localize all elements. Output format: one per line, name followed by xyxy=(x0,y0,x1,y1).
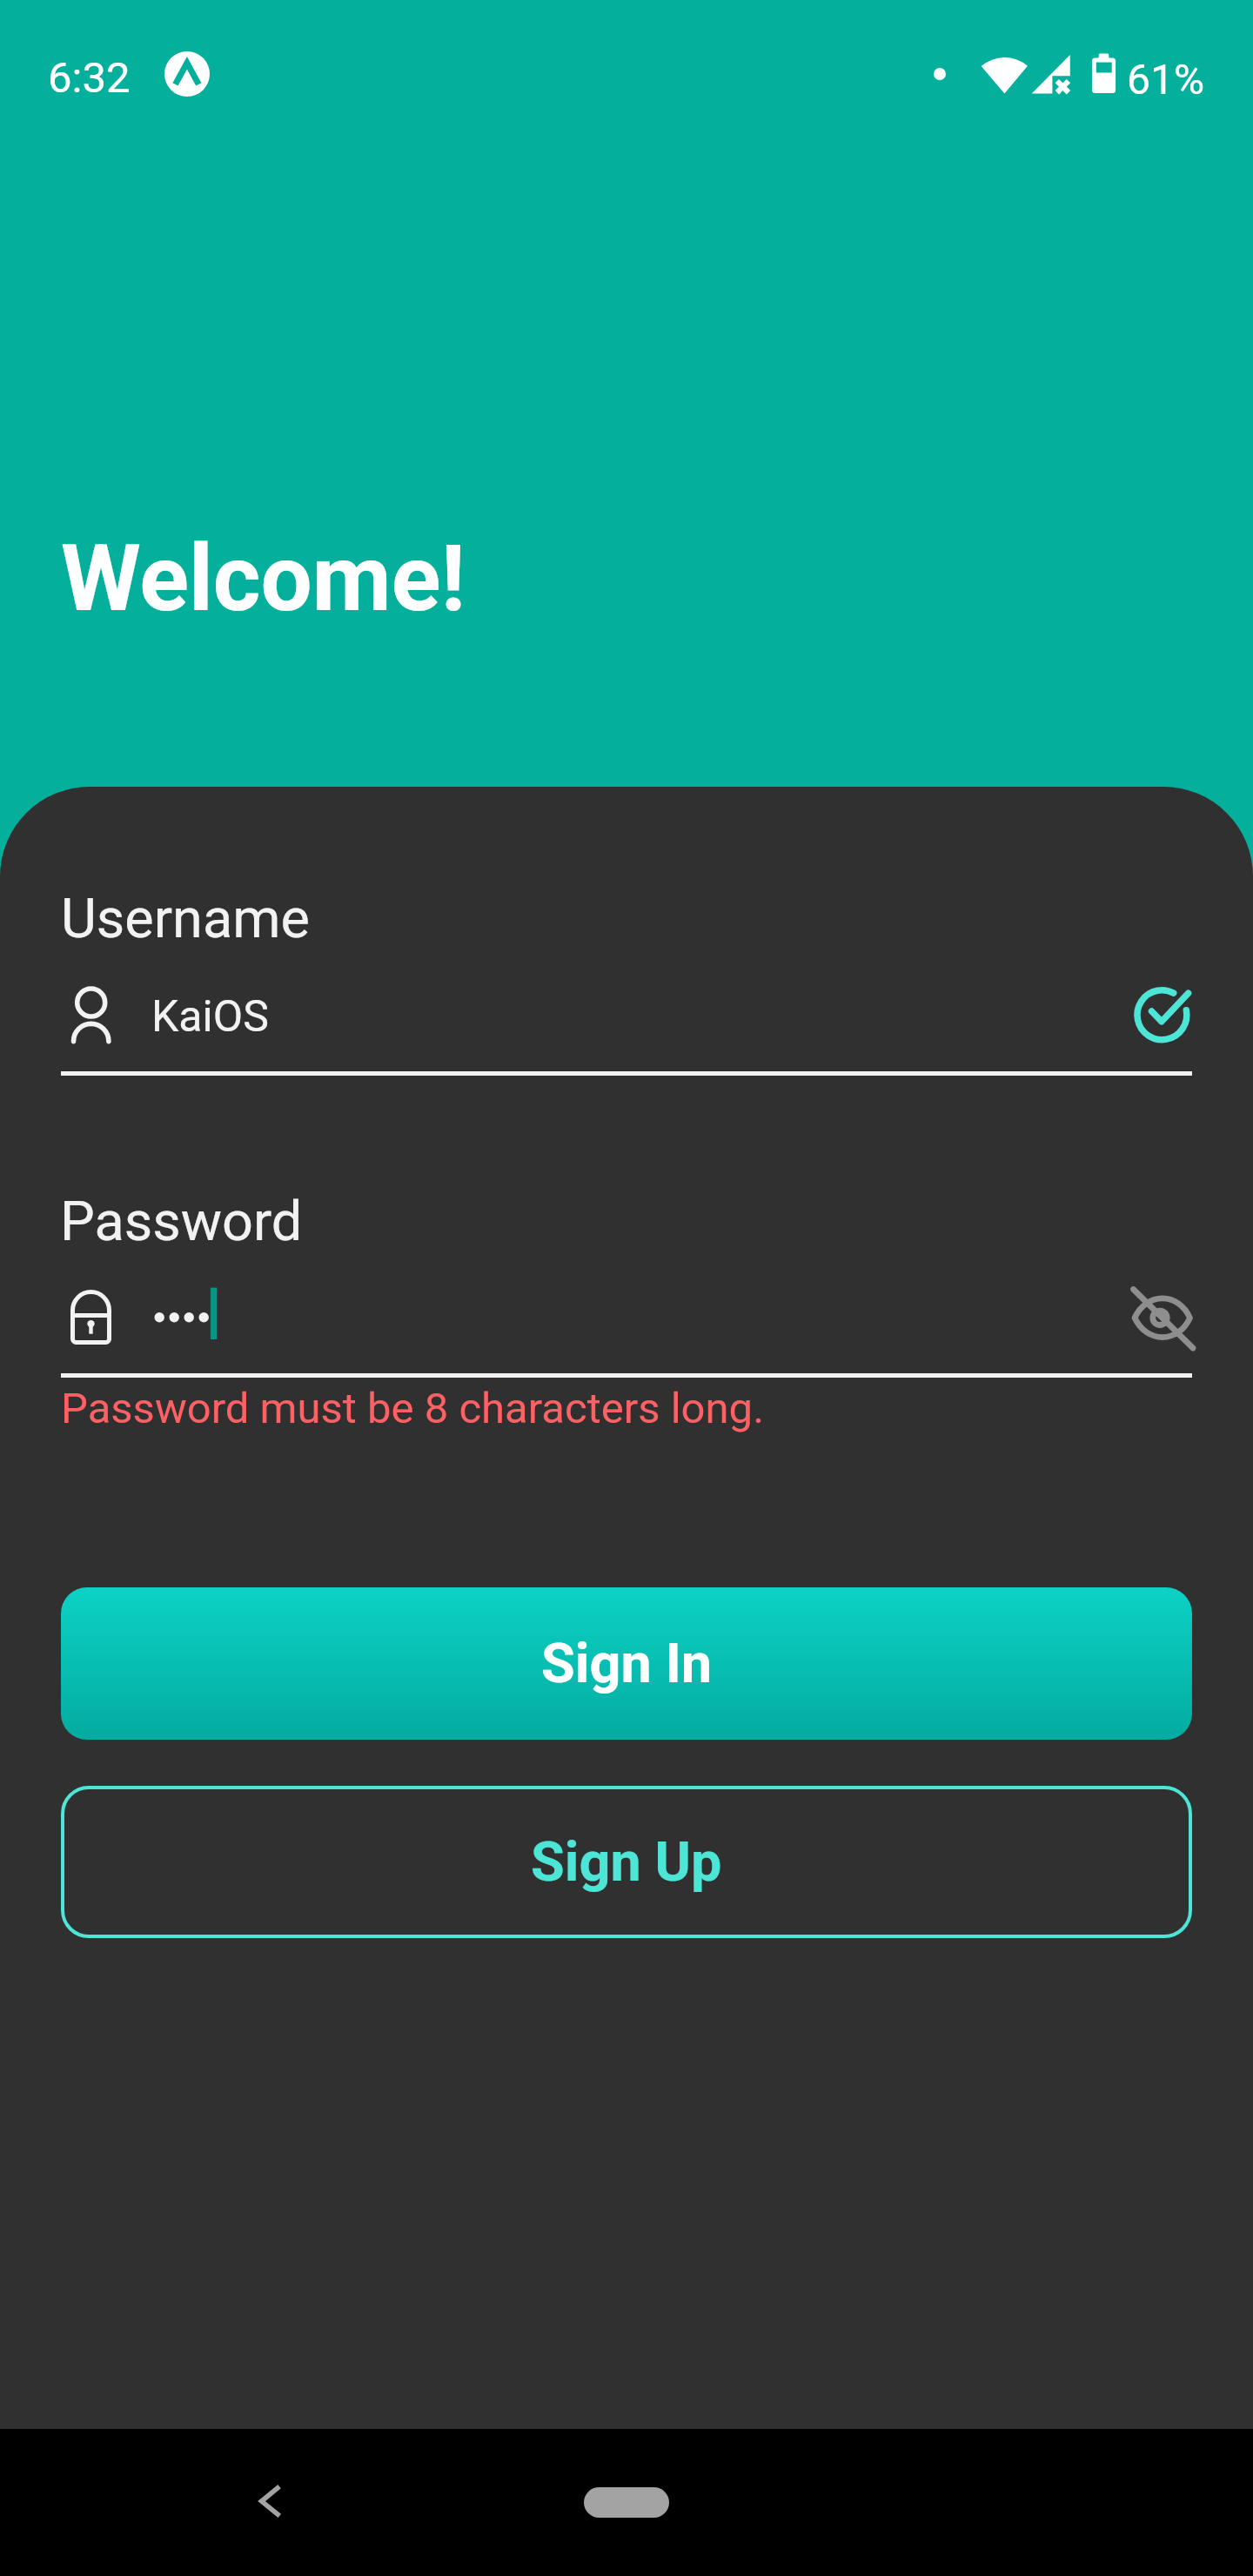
staticText: 61% xyxy=(1127,55,1205,104)
button[interactable]: Back xyxy=(256,2483,285,2521)
button[interactable]: Password field xyxy=(61,1271,1105,1378)
button[interactable]: Sign In xyxy=(61,1587,1192,1740)
staticText: KaiOS xyxy=(151,991,269,1043)
button[interactable]: Username field xyxy=(61,968,1105,1076)
staticText: 6:32 xyxy=(48,53,131,103)
button[interactable]: Show password xyxy=(1129,1282,1196,1350)
button[interactable]: Sign Up xyxy=(61,1786,1192,1938)
staticText: Welcome! xyxy=(61,526,466,633)
staticText: Password xyxy=(60,1190,303,1254)
staticText: Username xyxy=(61,887,310,951)
button[interactable]: Username valid xyxy=(1130,983,1193,1046)
staticText: Sign In xyxy=(541,1632,713,1696)
staticText: Sign Up xyxy=(531,1830,722,1895)
button[interactable]: Home xyxy=(584,2487,669,2518)
staticText: Password must be 8 characters long. xyxy=(61,1384,765,1433)
